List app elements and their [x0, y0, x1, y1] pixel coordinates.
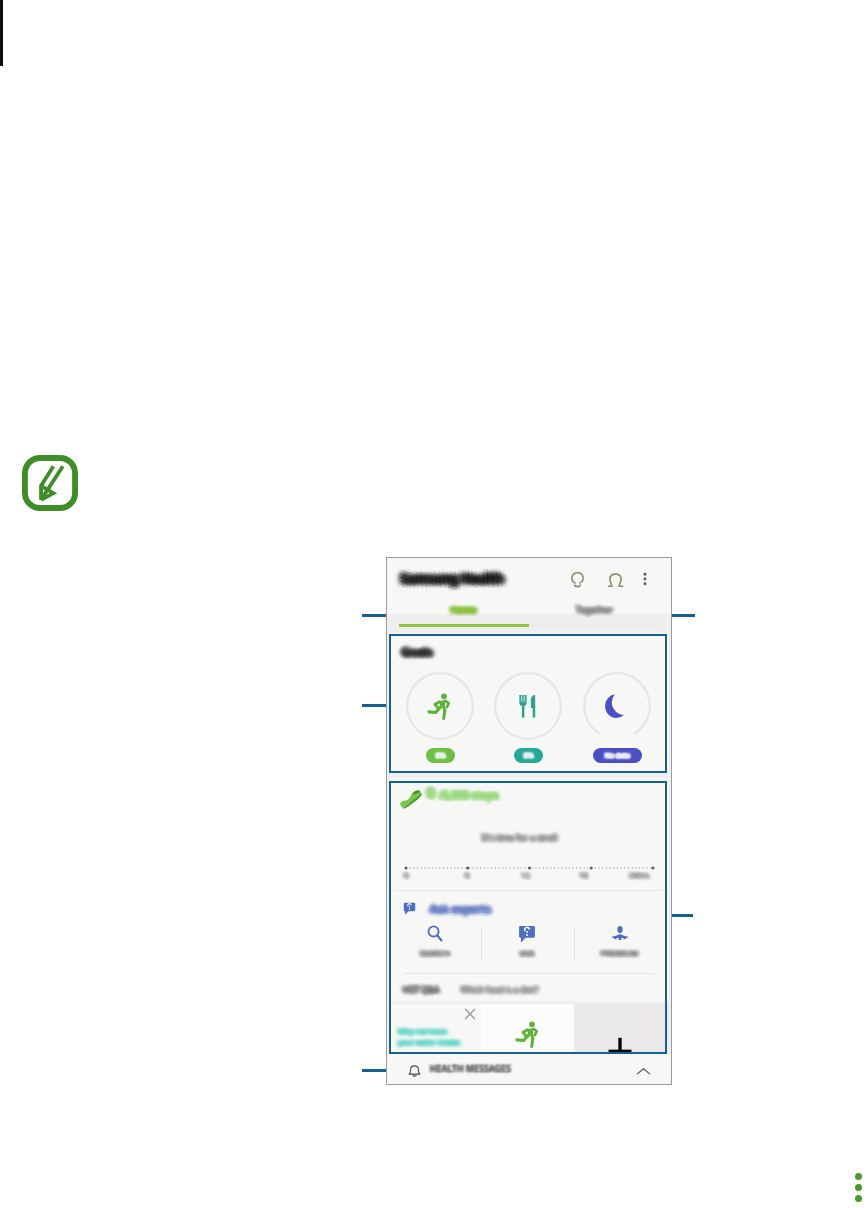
staticText: Why not track [401, 1027, 450, 1037]
staticText: 12 [522, 872, 531, 882]
staticText: your water intake [395, 1036, 457, 1046]
button[interactable]: HOT Q&A [403, 980, 539, 998]
staticText: /6,000 steps [435, 788, 495, 802]
staticText: Together [578, 605, 615, 617]
staticText: PREMIUM [600, 948, 638, 958]
staticText: Which food is a diet? [461, 987, 539, 998]
staticText: HOT Q&A [406, 988, 442, 999]
staticText: /6,000 steps [440, 786, 500, 800]
staticText: PREMIUM [600, 947, 638, 957]
staticText: ASK [525, 950, 540, 960]
button[interactable] [389, 1004, 481, 1052]
staticText: Ask experts [428, 902, 489, 917]
staticText: 18 [576, 868, 585, 878]
staticText: Ask experts [428, 899, 489, 914]
staticText: It's time for a stroll [482, 829, 558, 841]
staticText: Ask experts [431, 904, 492, 919]
staticText: 18 [582, 870, 591, 880]
staticText: 0 [403, 871, 408, 881]
staticText: ASK [518, 947, 533, 957]
button[interactable]: Tips [565, 567, 589, 591]
staticText: /6,000 steps [439, 790, 499, 804]
button[interactable]: ASK [496, 925, 558, 963]
staticText: 6 [466, 869, 471, 879]
staticText: /6,000 steps [436, 787, 496, 801]
staticText: 12 [518, 869, 527, 879]
button[interactable]: 0% [426, 748, 455, 763]
staticText: /6,000 steps [440, 790, 500, 804]
staticText: PREMIUM [603, 949, 641, 959]
staticText: It's time for a stroll [480, 829, 556, 841]
staticText: 6 [465, 867, 470, 877]
button[interactable]: Expand health messages [632, 1060, 654, 1082]
staticText: SEARCH [423, 950, 453, 960]
staticText: 6 [468, 873, 473, 883]
staticText: Together [576, 603, 613, 615]
staticText: HOT Q&A [401, 986, 437, 997]
staticText: Home [454, 603, 480, 615]
staticText: Which food is a diet? [458, 984, 536, 995]
staticText: 18 [579, 872, 588, 882]
staticText: your water intake [400, 1038, 462, 1048]
staticText: Home [450, 603, 476, 615]
staticText: SEARCH [419, 947, 449, 957]
button[interactable]: Profile [603, 567, 627, 591]
staticText: SEARCH [419, 949, 449, 959]
staticText: ASK [517, 950, 532, 960]
button[interactable]: SEARCH [404, 925, 466, 963]
staticText: 18 [579, 871, 588, 881]
staticText: 12 [517, 872, 526, 882]
button[interactable] [406, 672, 474, 740]
staticText: your water intake [402, 1039, 464, 1049]
button[interactable] [481, 1004, 574, 1052]
staticText: Together [576, 604, 613, 616]
staticText: 0% [435, 749, 445, 758]
staticText: ASK [523, 950, 538, 960]
button[interactable] [583, 672, 651, 740]
staticText: HOT Q&A [403, 985, 439, 996]
staticText: Samsung Health [397, 567, 500, 584]
staticText: 24hrs [626, 869, 646, 879]
staticText: 0% [436, 752, 446, 761]
button[interactable]: Together [528, 598, 660, 622]
staticText: Which food is a diet? [461, 981, 539, 992]
staticText: PREMIUM [603, 947, 641, 957]
staticText: 0 [407, 871, 412, 881]
staticText: 0% [523, 752, 533, 761]
staticText: ASK [518, 950, 533, 960]
staticText: 24hrs [627, 867, 647, 877]
button[interactable]: Home [400, 598, 528, 622]
button[interactable]: 0% [514, 748, 543, 763]
staticText: 0% [438, 749, 448, 758]
staticText: 0% [437, 752, 447, 761]
staticText: 0% [524, 750, 534, 759]
staticText: 0% [525, 752, 535, 761]
staticText: 6 [465, 870, 470, 880]
staticText: Which food is a diet? [456, 987, 534, 998]
staticText: your water intake [401, 1041, 463, 1051]
staticText: Home [455, 603, 481, 615]
staticText: ASK [523, 946, 538, 956]
button[interactable] [574, 1004, 669, 1052]
button[interactable]: PREMIUM [589, 925, 651, 963]
staticText: 24hrs [626, 872, 646, 882]
staticText: It's time for a stroll [478, 832, 554, 844]
staticText: ASK [518, 952, 533, 962]
staticText: SEARCH [420, 951, 450, 961]
button[interactable]: More options [633, 567, 657, 591]
staticText: Why not track [403, 1028, 452, 1038]
staticText: Which food is a diet? [462, 986, 540, 997]
button[interactable] [494, 672, 562, 740]
staticText: 24hrs [630, 868, 650, 878]
button[interactable]: No data [593, 748, 642, 763]
staticText: 24hrs [630, 871, 650, 881]
staticText: /6,000 steps [437, 787, 497, 801]
staticText: 6 [464, 870, 469, 880]
staticText: 0 [426, 780, 434, 798]
button[interactable] [386, 1054, 672, 1085]
staticText: 24hrs [628, 869, 648, 879]
staticText: 0 [404, 867, 409, 877]
staticText: 24hrs [625, 870, 645, 880]
staticText: 18 [577, 871, 586, 881]
staticText: 0 [424, 785, 432, 803]
